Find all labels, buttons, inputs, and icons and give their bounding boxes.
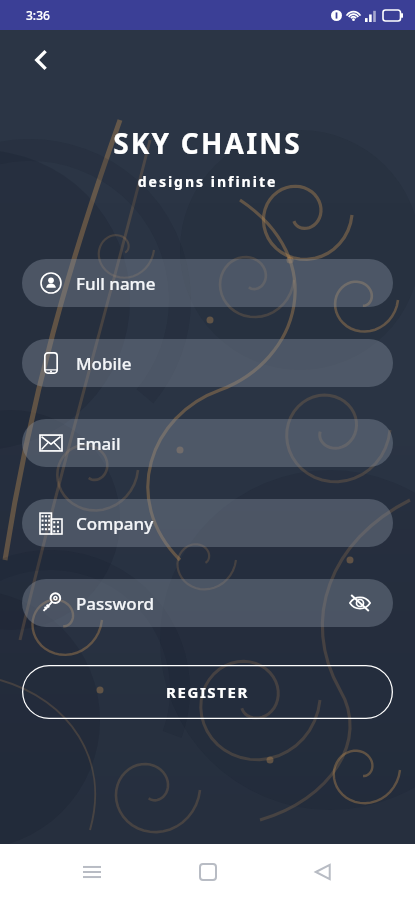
staticText: 3:36 xyxy=(26,7,50,23)
button[interactable]: Full name xyxy=(22,259,393,307)
button[interactable]: REGISTER xyxy=(22,665,393,719)
button[interactable]: Show password xyxy=(345,588,375,618)
button[interactable]: Back xyxy=(18,36,66,84)
button[interactable]: Password xyxy=(22,579,393,627)
staticText: Company xyxy=(76,512,154,535)
staticText: Email xyxy=(76,432,121,455)
staticText: SKY CHAINS xyxy=(0,124,415,162)
staticText: Password xyxy=(76,592,155,615)
button[interactable]: Mobile xyxy=(22,339,393,387)
staticText: Mobile xyxy=(76,352,132,375)
button[interactable]: Email xyxy=(22,419,393,467)
staticText: designs infinite xyxy=(0,172,415,191)
button[interactable]: Recent apps xyxy=(69,849,115,895)
staticText: REGISTER xyxy=(166,682,249,702)
staticText: Full name xyxy=(76,272,156,295)
button[interactable]: Company xyxy=(22,499,393,547)
button[interactable]: Home xyxy=(185,849,231,895)
button[interactable]: Back xyxy=(300,849,346,895)
